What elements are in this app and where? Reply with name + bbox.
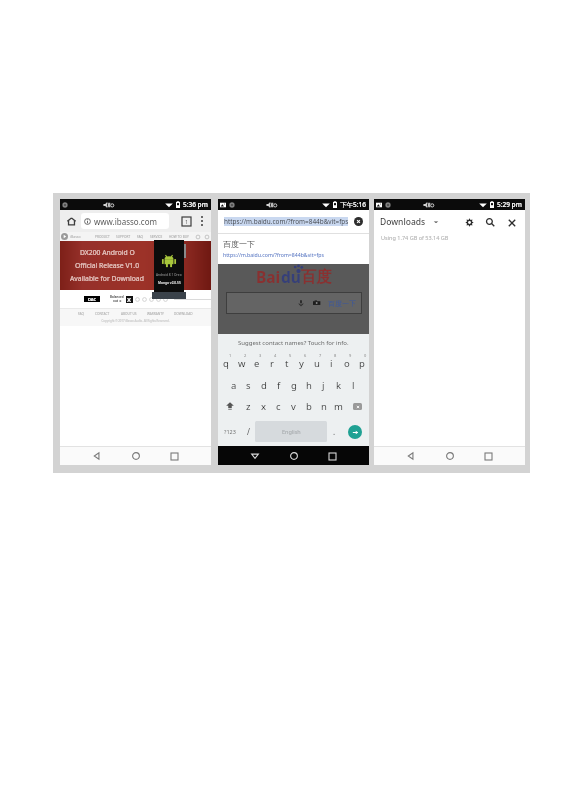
staticText: DX200 Android O <box>80 248 135 257</box>
staticText: h <box>306 379 312 392</box>
staticText: v <box>291 400 296 413</box>
button[interactable]: Settings <box>463 216 476 229</box>
button[interactable]: c <box>271 395 286 417</box>
staticText: FAQ <box>137 235 144 239</box>
staticText: 下午5:16 <box>340 200 366 209</box>
staticText: . <box>333 426 336 437</box>
staticText: 百度一下 <box>328 299 356 308</box>
staticText: Android 8.1 Oreo <box>156 273 182 277</box>
button[interactable]: u <box>309 352 324 375</box>
button[interactable]: ?123 <box>218 417 241 446</box>
button[interactable]: l <box>346 375 361 395</box>
button[interactable]: f <box>271 375 286 395</box>
button[interactable]: Search <box>484 216 497 229</box>
staticText: Mango v2.0.55 <box>158 281 181 285</box>
staticText: m <box>334 400 343 413</box>
staticText: SUPPORT <box>116 235 131 239</box>
staticText: 4 <box>274 353 277 358</box>
staticText: 百度 <box>301 267 332 287</box>
staticText: a <box>231 379 237 392</box>
staticText: c <box>276 400 281 413</box>
staticText: ABOUT US <box>121 312 137 316</box>
staticText: r <box>270 357 274 370</box>
button[interactable]: b <box>301 395 316 417</box>
button[interactable]: v <box>286 395 301 417</box>
staticText: 5 <box>289 353 292 358</box>
button[interactable]: Close <box>505 216 518 229</box>
button[interactable]: English <box>255 421 327 442</box>
button[interactable]: j <box>316 375 331 395</box>
button[interactable]: g <box>286 375 301 395</box>
staticText: p <box>359 357 365 370</box>
button[interactable]: e <box>249 352 264 375</box>
staticText: DOWNLOAD <box>174 312 193 316</box>
staticText: FAQ <box>78 312 85 316</box>
staticText: 6 <box>304 353 307 358</box>
button[interactable]: d <box>256 375 271 395</box>
staticText: Suggest contact names? Touch for info. <box>238 339 349 347</box>
button[interactable]: p <box>354 352 369 375</box>
staticText: Bai <box>256 266 281 287</box>
button[interactable]: q <box>218 352 234 375</box>
button[interactable]: y <box>294 352 309 375</box>
staticText: https://m.baidu.com/?from=844b&vit=fps <box>224 217 348 226</box>
staticText: / <box>247 426 250 437</box>
staticText: Using 1.74 GB of 53.14 GB <box>381 234 449 241</box>
button[interactable]: i <box>324 352 339 375</box>
button[interactable]: Recents <box>480 448 496 464</box>
staticText: j <box>322 379 325 392</box>
button[interactable]: Go <box>341 417 369 446</box>
button[interactable]: More options <box>198 214 206 228</box>
button[interactable]: Hide keyboard <box>247 448 263 464</box>
staticText: DAC <box>88 297 97 302</box>
button[interactable]: n <box>316 395 331 417</box>
staticText: o <box>344 357 350 370</box>
button[interactable]: o <box>339 352 354 375</box>
button[interactable]: Home <box>442 448 458 464</box>
staticText: WARRANTY <box>147 312 164 316</box>
button[interactable]: x <box>256 395 271 417</box>
button[interactable]: . <box>327 417 341 446</box>
button[interactable]: Back <box>89 448 105 464</box>
button[interactable]: Back <box>403 448 419 464</box>
button[interactable]: t <box>279 352 294 375</box>
staticText: English <box>282 428 301 435</box>
button[interactable]: z <box>241 395 256 417</box>
staticText: 0 <box>364 353 367 358</box>
button[interactable]: https://m.baidu.com/?from=844b&vit=fps <box>224 217 348 226</box>
button[interactable]: m <box>331 395 346 417</box>
staticText: e <box>254 357 260 370</box>
button[interactable]: Backspace <box>346 395 369 417</box>
button[interactable]: s <box>241 375 256 395</box>
button[interactable]: Home page <box>64 214 78 228</box>
button[interactable]: / <box>241 417 255 446</box>
button[interactable]: 百度一下 <box>218 234 369 264</box>
button[interactable]: Home <box>128 448 144 464</box>
staticText: Balanced <box>110 295 124 299</box>
staticText: g <box>291 379 297 392</box>
staticText: Official Release V1.0 <box>75 261 140 270</box>
button[interactable]: Tabs <box>182 217 191 226</box>
staticText: 7 <box>319 353 322 358</box>
staticText: y <box>299 357 304 370</box>
staticText: 5:29 pm <box>497 200 522 209</box>
button[interactable]: Recents <box>166 448 182 464</box>
staticText: Available for Download <box>70 274 144 283</box>
button[interactable]: Recents <box>324 448 340 464</box>
staticText: out ⊕ <box>113 299 122 303</box>
staticText: x <box>261 400 267 413</box>
button[interactable]: Suggest contact names? Touch for info. <box>218 334 369 352</box>
button[interactable]: Clear text <box>354 217 363 226</box>
button[interactable]: w <box>234 352 249 375</box>
staticText: du <box>281 266 301 287</box>
button[interactable]: a <box>226 375 241 395</box>
button[interactable]: k <box>331 375 346 395</box>
button[interactable]: Home <box>286 448 302 464</box>
button[interactable]: Shift <box>218 395 241 417</box>
button[interactable]: r <box>264 352 279 375</box>
button[interactable]: www.ibasso.com <box>81 213 169 229</box>
staticText: Copyright © 2017 iBasso Audio. All Right… <box>60 319 211 323</box>
button[interactable]: h <box>301 375 316 395</box>
button[interactable]: Downloads <box>380 216 439 228</box>
staticText: t <box>285 357 289 370</box>
